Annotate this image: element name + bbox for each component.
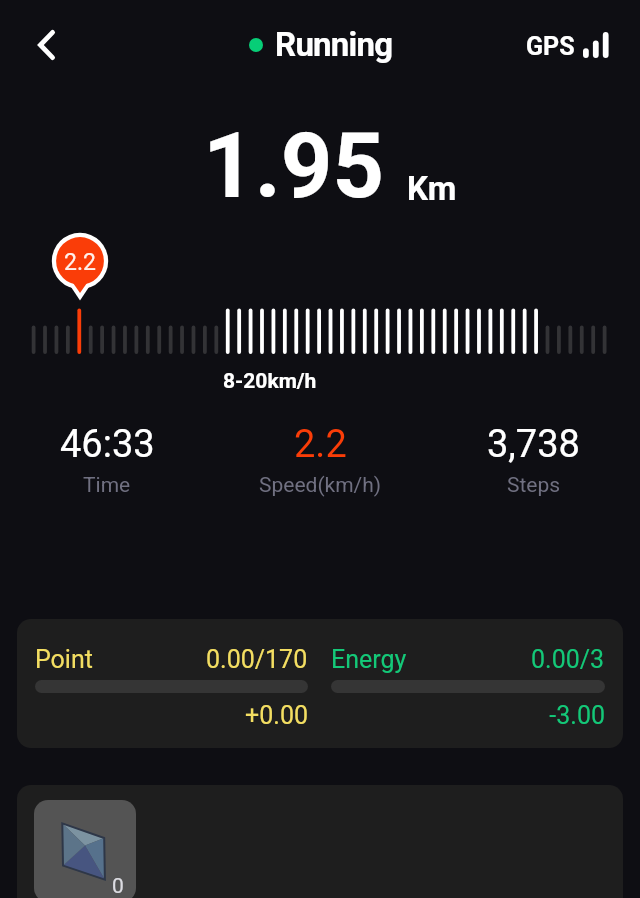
staticText: 0.00/3 [531, 645, 605, 674]
staticText: Time [83, 473, 131, 498]
staticText: 3,738 [487, 422, 580, 467]
staticText: Running [275, 25, 393, 64]
staticText: 8-20km/h [223, 369, 317, 394]
staticText: GPS [526, 32, 575, 61]
staticText: Point [35, 645, 93, 674]
button[interactable]: GPS signal [526, 32, 610, 61]
staticText: Steps [507, 473, 561, 498]
staticText: -3.00 [331, 701, 605, 730]
staticText: Km [407, 169, 457, 208]
staticText: 0.00/170 [206, 645, 308, 674]
button[interactable]: Point [17, 619, 623, 748]
staticText: Speed(km/h) [259, 473, 382, 498]
button[interactable]: Gem item [34, 800, 136, 898]
staticText: Energy [331, 645, 407, 674]
staticText: 2.2 [46, 249, 114, 276]
staticText: +0.00 [35, 701, 308, 730]
staticText: 46:33 [60, 422, 155, 467]
staticText: 1.95 [203, 114, 385, 214]
staticText: 0 [112, 874, 124, 898]
button[interactable]: Back [22, 21, 70, 69]
staticText: 2.2 [294, 422, 347, 467]
